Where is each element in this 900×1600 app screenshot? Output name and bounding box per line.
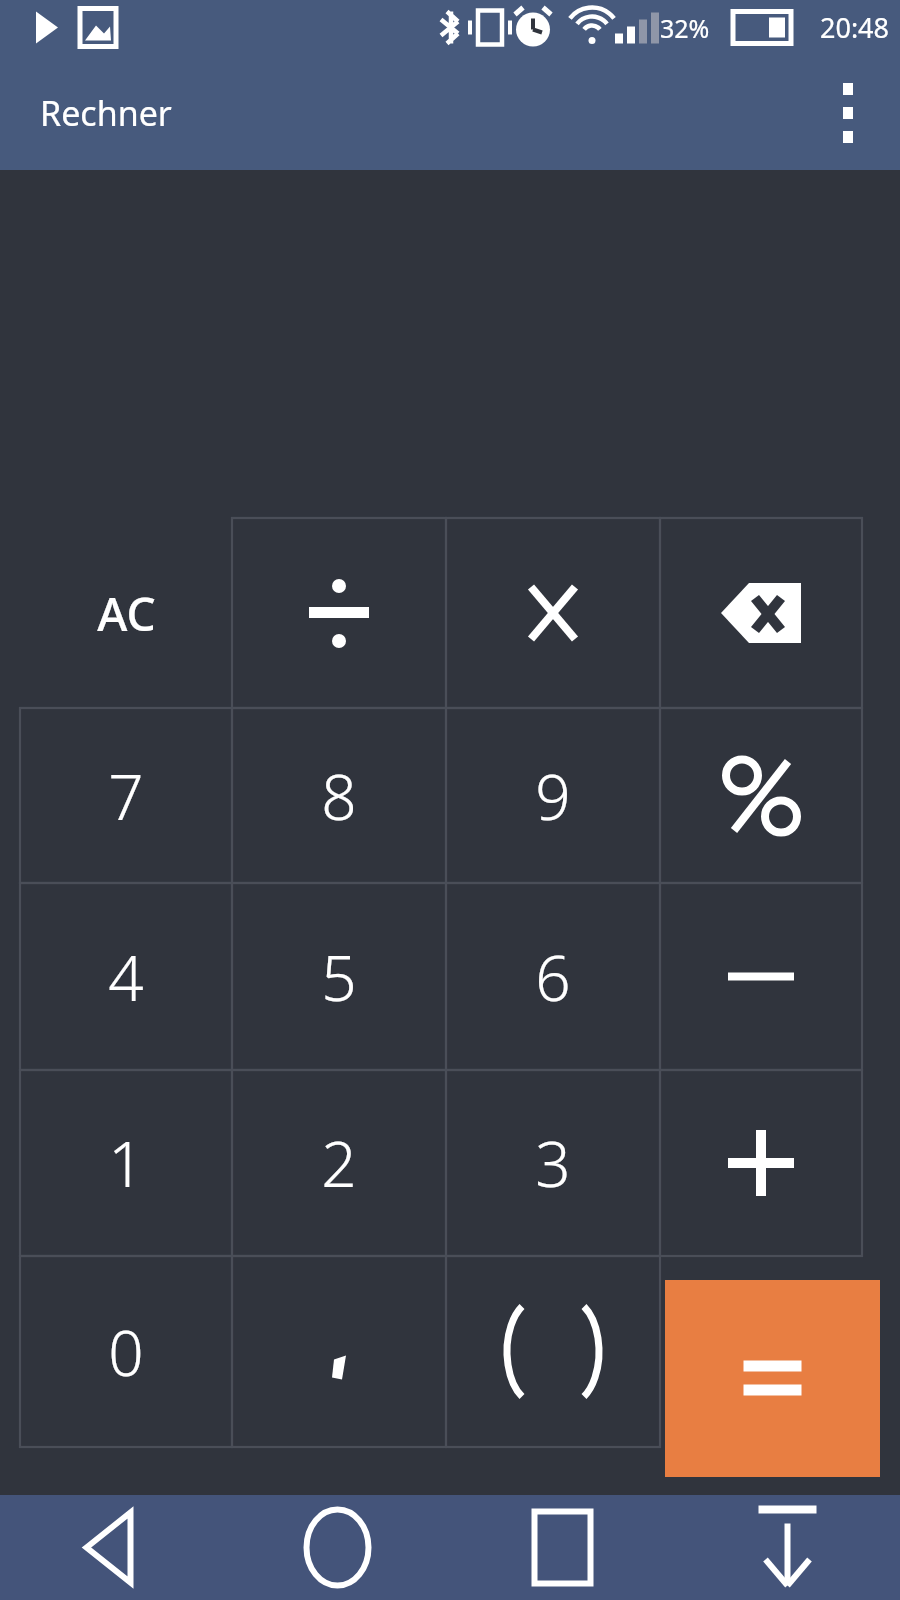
staticText: 3 (535, 1121, 571, 1205)
button[interactable]: Parentheses (446, 1256, 660, 1447)
button[interactable]: More options (812, 77, 884, 149)
button[interactable]: 8 (232, 708, 446, 883)
button[interactable]: Divide (232, 518, 446, 708)
button[interactable]: Plus (660, 1070, 862, 1256)
button[interactable]: Minus (660, 883, 862, 1070)
staticText: 4 (108, 935, 144, 1019)
button[interactable]: Back (0, 1495, 225, 1600)
button[interactable]: 3 (446, 1070, 660, 1256)
button[interactable]: 9 (446, 708, 660, 883)
button[interactable]: Backspace (660, 518, 862, 708)
button[interactable]: 7 (20, 708, 232, 883)
staticText: 7 (108, 754, 144, 838)
button[interactable]: Recents (450, 1495, 675, 1600)
button[interactable]: 0 (20, 1256, 232, 1447)
button[interactable]: 6 (446, 883, 660, 1070)
staticText: 6 (535, 935, 571, 1019)
button[interactable]: Comma (232, 1256, 446, 1447)
button[interactable]: Percent (660, 708, 862, 883)
button[interactable]: 1 (20, 1070, 232, 1256)
button[interactable]: AC (20, 518, 232, 708)
staticText: 5 (321, 935, 357, 1019)
button[interactable]: 5 (232, 883, 446, 1070)
staticText: 32% (660, 11, 710, 45)
staticText: 0 (108, 1310, 144, 1394)
button[interactable]: Multiply (446, 518, 660, 708)
staticText: 9 (535, 754, 571, 838)
button[interactable]: Hide keyboard (675, 1495, 900, 1600)
staticText: 8 (321, 754, 357, 838)
staticText: 1 (108, 1121, 144, 1205)
staticText: AC (97, 582, 156, 645)
button[interactable]: Equals (665, 1280, 880, 1477)
staticText: 2 (321, 1121, 357, 1205)
staticText: Rechner (40, 90, 172, 136)
button[interactable]: 4 (20, 883, 232, 1070)
staticText: 20:48 (820, 9, 890, 46)
button[interactable]: 2 (232, 1070, 446, 1256)
button[interactable]: Home (225, 1495, 450, 1600)
